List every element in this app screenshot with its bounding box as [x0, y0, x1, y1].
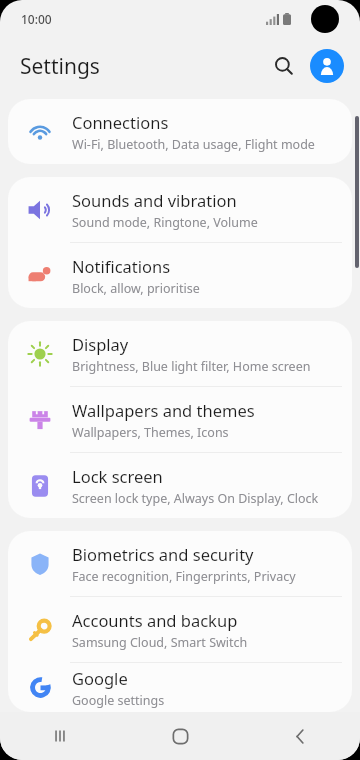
staticText: Wi-Fi, Bluetooth, Data usage, Flight mod…: [72, 136, 315, 153]
button[interactable]: Accounts and backup: [8, 597, 352, 662]
staticText: Sounds and vibration: [72, 189, 237, 211]
staticText: Connections: [72, 111, 169, 133]
button[interactable]: Account: [310, 49, 344, 83]
staticText: Screen lock type, Always On Display, Clo…: [72, 490, 342, 507]
staticText: Google: [72, 667, 128, 689]
button[interactable]: Google: [8, 663, 352, 712]
staticText: 10:00: [21, 11, 52, 27]
button[interactable]: Home: [120, 712, 240, 760]
staticText: Settings: [20, 52, 100, 81]
staticText: Accounts and backup: [72, 609, 238, 631]
staticText: Wallpapers, Themes, Icons: [72, 424, 229, 441]
button[interactable]: Sounds and vibration: [8, 177, 352, 242]
staticText: Brightness, Blue light filter, Home scre…: [72, 358, 311, 375]
button[interactable]: Search: [264, 46, 304, 86]
staticText: Google settings: [72, 692, 165, 709]
staticText: Sound mode, Ringtone, Volume: [72, 214, 258, 231]
staticText: Lock screen: [72, 465, 163, 487]
button[interactable]: Recents: [0, 712, 120, 760]
staticText: Samsung Cloud, Smart Switch: [72, 634, 248, 651]
staticText: Notifications: [72, 255, 171, 277]
button[interactable]: Notifications: [8, 243, 352, 308]
button[interactable]: Back: [240, 712, 360, 760]
button[interactable]: Connections: [8, 99, 352, 164]
button[interactable]: Biometrics and security: [8, 531, 352, 596]
staticText: Face recognition, Fingerprints, Privacy: [72, 568, 296, 585]
button[interactable]: Wallpapers and themes: [8, 387, 352, 452]
button[interactable]: Display: [8, 321, 352, 386]
staticText: Block, allow, prioritise: [72, 280, 200, 297]
button[interactable]: Lock screen: [8, 453, 352, 518]
staticText: Wallpapers and themes: [72, 399, 255, 421]
staticText: Display: [72, 333, 129, 355]
staticText: Biometrics and security: [72, 543, 254, 565]
